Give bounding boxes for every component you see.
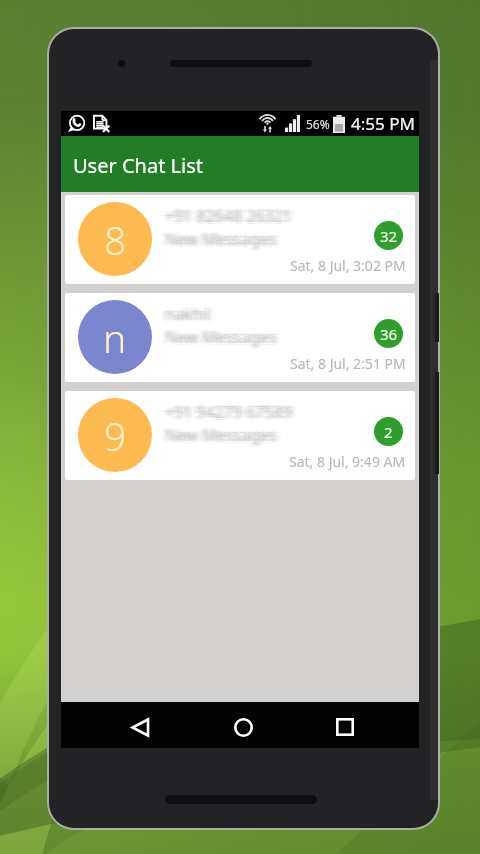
staticText: New Messages: [165, 326, 277, 348]
staticText: New Messages: [165, 328, 277, 350]
staticText: +91 82648 26321: [162, 205, 290, 227]
staticText: nakhil: [165, 303, 211, 325]
staticText: New Messages: [165, 230, 277, 252]
staticText: n: [103, 311, 127, 364]
staticText: nakhil: [170, 303, 216, 325]
staticText: nakhil: [163, 305, 209, 327]
staticText: +91 82648 26321: [167, 207, 295, 229]
staticText: +91 82648 26321: [166, 205, 294, 227]
staticText: New Messages: [168, 326, 280, 348]
staticText: +91 94279 67589: [167, 403, 295, 425]
staticText: nakhil: [167, 302, 213, 324]
staticText: nakhil: [164, 303, 210, 325]
button[interactable]: Home: [220, 704, 266, 750]
staticText: +91 94279 67589: [167, 400, 295, 422]
staticText: nakhil: [162, 303, 208, 325]
staticText: 2: [384, 422, 393, 442]
staticText: New Messages: [162, 228, 274, 250]
staticText: New Messages: [161, 228, 273, 250]
staticText: New Messages: [163, 328, 275, 350]
staticText: +91 82648 26321: [165, 203, 293, 225]
button[interactable]: 8: [65, 195, 415, 284]
staticText: +91 94279 67589: [165, 403, 293, 425]
button[interactable]: n: [65, 293, 415, 382]
staticText: New Messages: [165, 426, 277, 448]
staticText: New Messages: [166, 228, 278, 250]
staticText: +91 94279 67589: [168, 401, 296, 423]
staticText: New Messages: [167, 227, 279, 249]
staticText: 56%: [306, 116, 330, 132]
staticText: Sat, 8 Jul, 2:51 PM: [290, 354, 406, 373]
staticText: +91 82648 26321: [168, 205, 296, 227]
button[interactable]: 9: [65, 391, 415, 480]
staticText: New Messages: [168, 228, 280, 250]
staticText: New Messages: [165, 226, 277, 248]
staticText: User Chat List: [73, 152, 204, 179]
staticText: +91 94279 67589: [163, 400, 291, 422]
staticText: New Messages: [167, 325, 279, 347]
staticText: New Messages: [165, 228, 277, 250]
button[interactable]: Back: [116, 704, 162, 750]
staticText: nakhil: [167, 305, 213, 327]
staticText: New Messages: [162, 326, 274, 348]
staticText: New Messages: [167, 423, 279, 445]
staticText: nakhil: [166, 303, 212, 325]
staticText: New Messages: [164, 424, 276, 446]
staticText: New Messages: [162, 424, 274, 446]
staticText: +91 94279 67589: [170, 401, 298, 423]
staticText: New Messages: [164, 228, 276, 250]
staticText: New Messages: [170, 424, 282, 446]
staticText: New Messages: [163, 227, 275, 249]
button[interactable]: User Chat List: [61, 136, 419, 192]
staticText: New Messages: [163, 325, 275, 347]
button[interactable]: Recent apps: [322, 704, 368, 750]
staticText: New Messages: [165, 424, 277, 446]
staticText: nakhil: [165, 305, 211, 327]
staticText: nakhil: [165, 301, 211, 323]
staticText: +91 94279 67589: [165, 399, 293, 421]
staticText: +91 82648 26321: [163, 204, 291, 226]
staticText: 32: [380, 226, 398, 246]
staticText: 9: [104, 409, 127, 462]
staticText: +91 82648 26321: [170, 205, 298, 227]
staticText: +91 82648 26321: [165, 205, 293, 227]
staticText: New Messages: [170, 326, 282, 348]
staticText: 8: [104, 213, 127, 266]
staticText: New Messages: [165, 422, 277, 444]
staticText: Sat, 8 Jul, 3:02 PM: [290, 256, 406, 275]
staticText: nakhil: [161, 303, 207, 325]
staticText: New Messages: [168, 424, 280, 446]
staticText: New Messages: [164, 326, 276, 348]
staticText: +91 82648 26321: [163, 207, 291, 229]
staticText: New Messages: [163, 426, 275, 448]
staticText: New Messages: [161, 424, 273, 446]
staticText: +91 94279 67589: [166, 401, 294, 423]
staticText: +91 94279 67589: [162, 401, 290, 423]
staticText: New Messages: [166, 326, 278, 348]
staticText: New Messages: [170, 228, 282, 250]
staticText: 36: [380, 324, 398, 344]
staticText: +91 82648 26321: [164, 205, 292, 227]
staticText: +91 94279 67589: [164, 401, 292, 423]
staticText: +91 94279 67589: [161, 401, 289, 423]
staticText: New Messages: [167, 328, 279, 350]
staticText: New Messages: [161, 326, 273, 348]
staticText: New Messages: [167, 230, 279, 252]
staticText: +91 82648 26321: [167, 204, 295, 226]
staticText: New Messages: [167, 426, 279, 448]
staticText: nakhil: [168, 303, 214, 325]
staticText: New Messages: [165, 324, 277, 346]
staticText: +91 94279 67589: [165, 401, 293, 423]
staticText: +91 82648 26321: [161, 205, 289, 227]
staticText: New Messages: [166, 424, 278, 446]
staticText: +91 94279 67589: [163, 403, 291, 425]
staticText: 4:55 PM: [351, 112, 415, 135]
staticText: nakhil: [163, 302, 209, 324]
staticText: New Messages: [163, 230, 275, 252]
staticText: Sat, 8 Jul, 9:49 AM: [289, 452, 406, 471]
staticText: +91 82648 26321: [165, 207, 293, 229]
staticText: New Messages: [163, 423, 275, 445]
